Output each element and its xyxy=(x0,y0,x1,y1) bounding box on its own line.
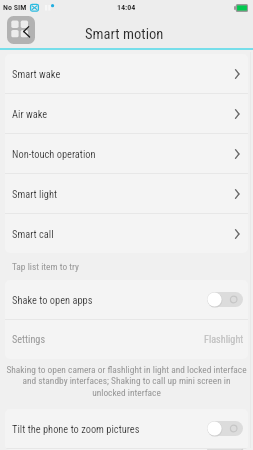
staticText: Smart wake xyxy=(12,68,61,80)
button[interactable] xyxy=(5,449,248,450)
button[interactable]: Air wake xyxy=(5,94,248,133)
staticText: Tilt the phone to zoom pictures xyxy=(12,423,140,435)
staticText: Shake to open apps xyxy=(12,294,93,306)
staticText: Air wake xyxy=(12,108,48,120)
staticText: Non-touch operation xyxy=(12,148,96,160)
staticText: Tap list item to try xyxy=(12,261,79,272)
button[interactable]: Non-touch operation xyxy=(5,134,248,173)
button[interactable]: Back xyxy=(7,16,35,44)
button[interactable]: Tilt the phone to zoom pictures xyxy=(5,409,248,448)
staticText: No SIM xyxy=(3,3,27,12)
button[interactable]: Shake to open apps xyxy=(5,280,248,319)
staticText: Smart light xyxy=(12,188,58,200)
staticText: 14:04 xyxy=(117,3,136,12)
button[interactable]: Smart light xyxy=(5,174,248,213)
button[interactable]: Settings xyxy=(5,320,248,359)
staticText: Smart motion xyxy=(85,25,164,42)
staticText: Flashlight xyxy=(204,334,244,346)
staticText: Shaking to open camera or flashlight in … xyxy=(0,364,253,399)
button[interactable]: Smart wake xyxy=(5,54,248,93)
button[interactable]: Smart call xyxy=(5,214,248,253)
staticText: Smart call xyxy=(12,228,54,240)
staticText: Settings xyxy=(12,334,46,346)
